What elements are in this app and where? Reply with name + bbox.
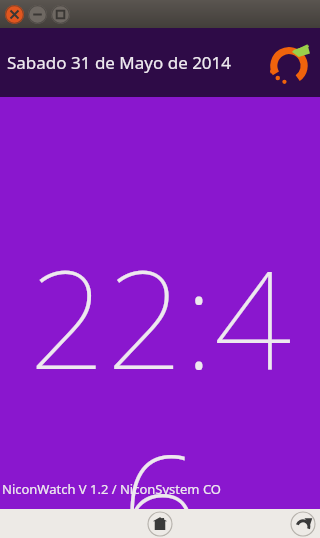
button[interactable]: Forward [290,511,316,537]
button[interactable]: Maximize window [51,5,70,24]
button[interactable]: App logo [264,38,314,88]
staticText: Sabado 31 de Mayo de 2014 [7,51,232,74]
staticText: 22:46 [0,224,320,538]
button[interactable]: Close window [5,5,24,24]
staticText: NiconWatch V 1.2 / NiconSystem CO [2,480,222,498]
button[interactable]: 22:46 [0,224,320,538]
button[interactable]: Home [147,511,173,537]
button[interactable]: Minimize window [28,5,47,24]
